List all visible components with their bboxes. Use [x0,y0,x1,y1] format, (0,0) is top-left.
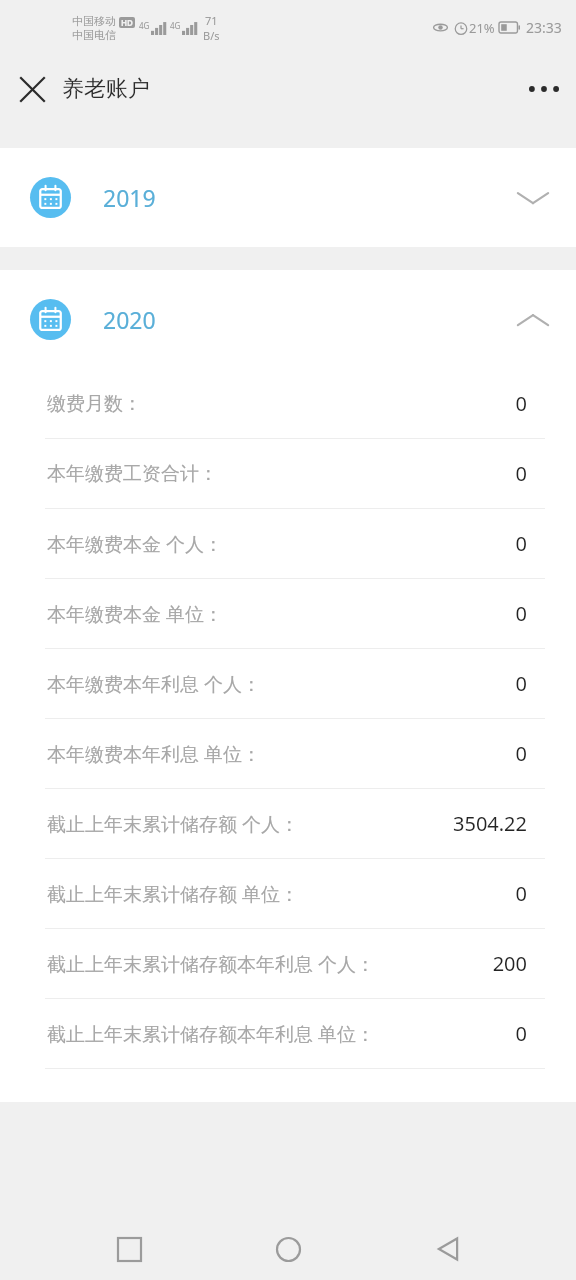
button[interactable]: 本年缴费本年利息 个人： [0,649,576,718]
button[interactable]: 2019 [0,148,576,247]
button[interactable]: More options [520,65,568,113]
staticText: 23:33 [526,18,562,37]
button[interactable]: 截止上年末累计储存额本年利息 单位： [0,999,576,1068]
button[interactable]: Back [417,1218,479,1280]
staticText: 0 [515,600,527,627]
staticText: 2020 [103,304,156,335]
staticText: 0 [515,390,527,417]
staticText: 2019 [103,182,156,213]
staticText: 截止上年末累计储存额 个人： [47,811,299,837]
staticText: 21% [469,19,495,37]
staticText: 本年缴费工资合计： [47,462,218,486]
staticText: 截止上年末累计储存额本年利息 单位： [47,1021,375,1047]
staticText: 3504.22 [453,810,527,837]
staticText: 0 [515,1020,527,1047]
button[interactable]: 本年缴费本金 单位： [0,579,576,648]
button[interactable]: Close [8,65,56,113]
staticText: B/s [203,28,220,43]
button[interactable]: Home [257,1218,319,1280]
staticText: 养老账户 [62,75,150,103]
staticText: 0 [515,460,527,487]
staticText: 71 [205,13,218,28]
button[interactable]: 2020 [0,270,576,369]
button[interactable]: 本年缴费本年利息 单位： [0,719,576,788]
staticText: 中国移动 [72,14,116,28]
button[interactable]: 截止上年末累计储存额本年利息 个人： [0,929,576,998]
button[interactable]: Recent apps [98,1218,160,1280]
button[interactable]: 本年缴费工资合计： [0,439,576,508]
button[interactable]: 截止上年末累计储存额 个人： [0,789,576,858]
staticText: 0 [515,740,527,767]
button[interactable]: 缴费月数： [0,369,576,438]
button[interactable]: 截止上年末累计储存额 单位： [0,859,576,928]
staticText: 4G [139,20,150,31]
staticText: 200 [492,950,527,977]
staticText: 0 [515,530,527,557]
button[interactable]: 本年缴费本金 个人： [0,509,576,578]
staticText: 0 [515,880,527,907]
staticText: 本年缴费本金 单位： [47,601,223,627]
staticText: 4G [170,20,181,31]
staticText: 截止上年末累计储存额 单位： [47,881,299,907]
staticText: 本年缴费本年利息 个人： [47,671,261,697]
staticText: 截止上年末累计储存额本年利息 个人： [47,951,375,977]
staticText: 本年缴费本金 个人： [47,531,223,557]
staticText: 本年缴费本年利息 单位： [47,741,261,767]
staticText: 0 [515,670,527,697]
staticText: 中国电信 [72,28,116,42]
staticText: HD [121,17,133,28]
staticText: 缴费月数： [47,392,142,416]
